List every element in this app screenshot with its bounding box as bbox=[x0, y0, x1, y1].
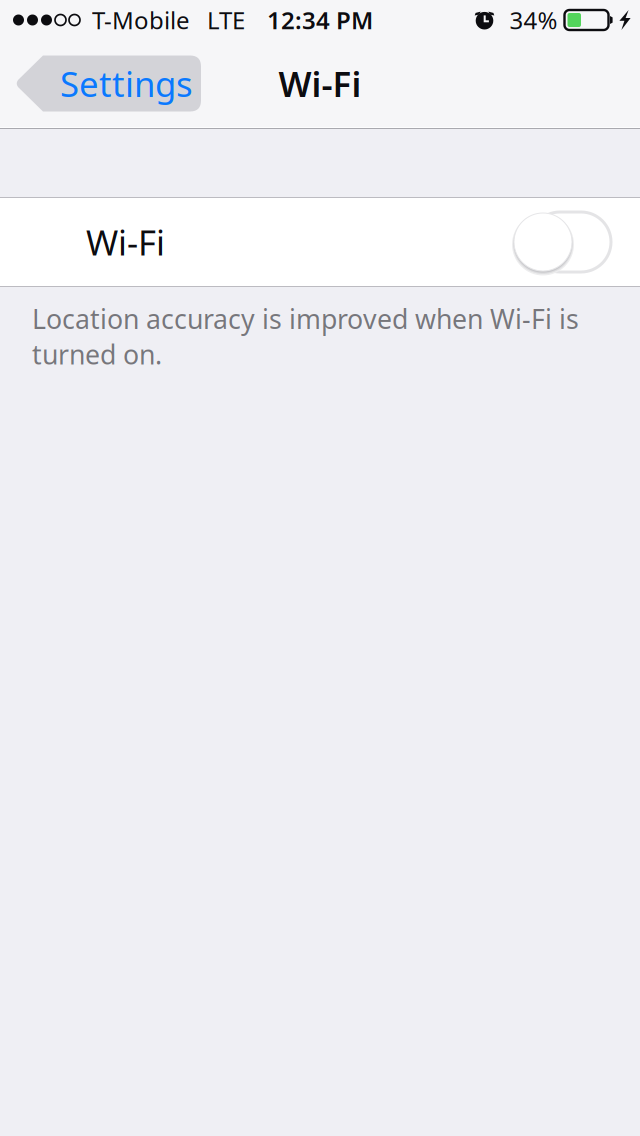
staticText: 34% bbox=[509, 4, 557, 36]
staticText: Wi-Fi bbox=[278, 60, 361, 106]
staticText: Location accuracy is improved when Wi-Fi… bbox=[32, 301, 579, 372]
staticText: Wi-Fi bbox=[86, 219, 165, 265]
button[interactable]: Wi-Fi bbox=[0, 198, 640, 286]
staticText: Settings bbox=[60, 60, 193, 106]
staticText: 12:34 PM bbox=[267, 4, 373, 36]
staticText: LTE bbox=[207, 4, 245, 36]
button[interactable]: Settings bbox=[15, 55, 201, 111]
staticText: T-Mobile bbox=[92, 4, 190, 36]
